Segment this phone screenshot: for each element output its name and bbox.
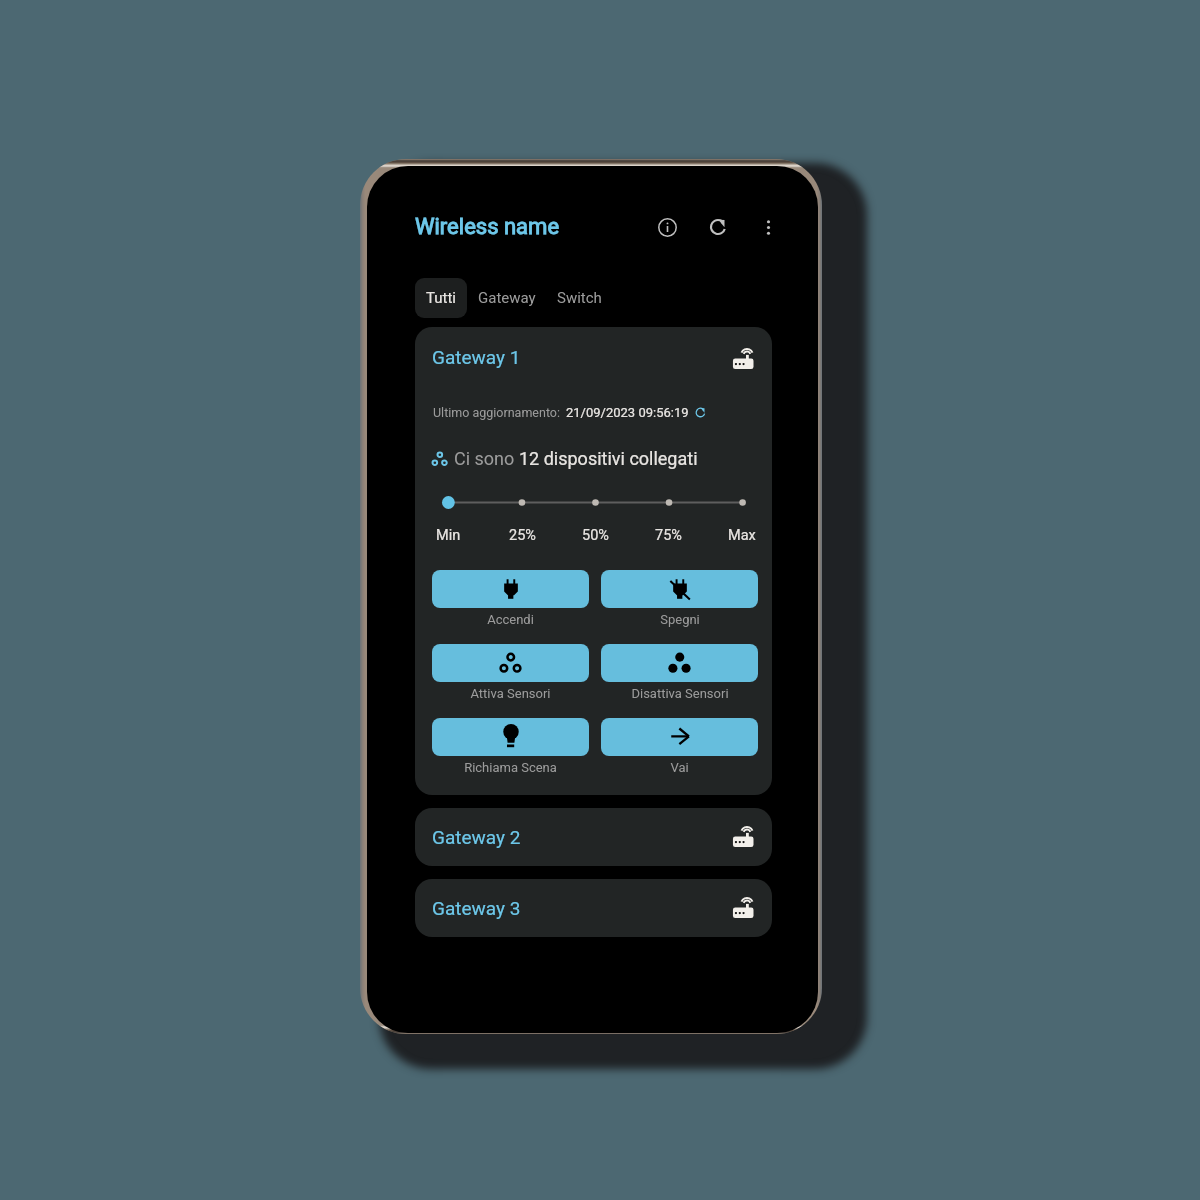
button[interactable]: Gateway [472,278,542,317]
button[interactable]: Refresh gateway [694,401,706,423]
staticText: Spegni [660,612,700,627]
staticText: Gateway 1 [432,346,521,368]
staticText: Attiva Sensori [470,686,551,701]
button[interactable]: More options [752,211,784,243]
staticText: 50% [582,527,609,544]
staticText: Max [728,527,756,544]
staticText: Ultimo aggiornamento: [433,405,561,420]
staticText: Switch [557,289,602,307]
staticText: 25% [509,527,536,544]
staticText: Ci sono [454,448,519,469]
staticText: 75% [655,527,682,544]
button[interactable]: Switch [551,278,608,317]
staticText: Disattiva Sensori [631,686,729,701]
button[interactable]: Spegni [601,570,758,608]
button[interactable]: Accendi [432,570,589,608]
staticText: Gateway 2 [432,826,521,848]
staticText: 12 dispositivi collegati [519,448,698,469]
staticText: Accendi [487,612,534,627]
button[interactable]: Gateway 2 [415,808,772,866]
staticText: Vai [670,760,689,775]
button[interactable]: Vai [601,718,758,756]
staticText: Wireless name [415,214,560,240]
button[interactable]: Richiama Scena [432,718,589,756]
staticText: Richiama Scena [464,760,557,775]
button[interactable]: Gateway 3 [415,879,772,937]
button[interactable]: Tutti [415,278,467,318]
button[interactable]: Disattiva Sensori [601,644,758,682]
staticText: Tutti [426,289,456,307]
staticText: Gateway 3 [432,897,521,919]
button[interactable]: Refresh [702,211,734,243]
staticText: 21/09/2023 09:56:19 [566,405,689,420]
button[interactable]: Info [651,211,683,243]
staticText: Min [436,527,461,544]
button[interactable]: Attiva Sensori [432,644,589,682]
staticText: Gateway [478,289,536,307]
